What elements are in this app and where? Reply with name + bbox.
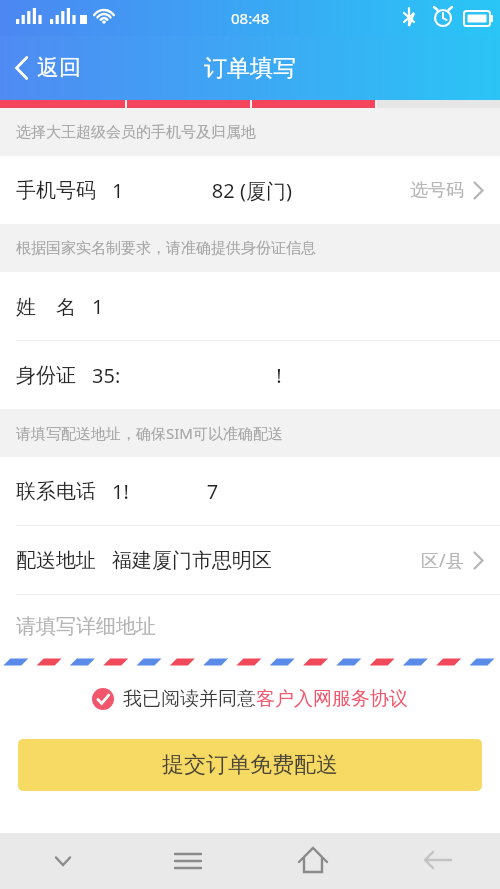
staticText: 提交订单免费配送 <box>162 751 338 779</box>
staticText: 福建厦门市思明区 <box>112 548 421 573</box>
button[interactable]: 返回 <box>0 36 95 100</box>
staticText: 身份证 <box>16 363 76 388</box>
staticText: 返回 <box>37 54 81 82</box>
button[interactable]: 提交订单免费配送 <box>18 739 482 791</box>
button[interactable]: 请填写详细地址 <box>0 595 500 657</box>
staticText: 选号码 <box>410 179 464 202</box>
staticText: 联系电话 <box>16 479 96 504</box>
staticText: 区/县 <box>421 548 464 573</box>
button[interactable]: Menu <box>125 833 250 889</box>
button[interactable]: 联系电话 <box>0 457 500 525</box>
staticText: 08:48 <box>231 8 270 28</box>
staticText: 姓 名 <box>16 293 76 320</box>
staticText: 1 82 (厦门) <box>112 177 410 204</box>
staticText: 请填写详细地址 <box>16 614 156 639</box>
staticText: 手机号码 <box>16 178 96 203</box>
staticText: 订单填写 <box>204 54 296 83</box>
button[interactable]: Back <box>375 833 500 889</box>
staticText: 35: ! <box>92 362 484 389</box>
staticText: 我已阅读并同意客户入网服务协议 <box>123 687 408 711</box>
button[interactable]: 姓 名 <box>0 272 500 340</box>
button[interactable]: Home <box>250 833 375 889</box>
button[interactable]: Agree <box>86 681 414 717</box>
button[interactable]: 配送地址 <box>0 526 500 594</box>
staticText: 选择大王超级会员的手机号及归属地 <box>16 123 256 142</box>
staticText: 根据国家实名制要求，请准确提供身份证信息 <box>16 239 316 258</box>
staticText: 1 <box>92 293 484 320</box>
staticText: 1! 7 <box>112 478 484 505</box>
staticText: 配送地址 <box>16 548 96 573</box>
button[interactable]: Collapse <box>0 833 125 889</box>
button[interactable]: 手机号码 <box>0 156 500 224</box>
button[interactable]: 身份证 <box>0 341 500 409</box>
staticText: 请填写配送地址，确保SIM可以准确配送 <box>16 423 283 443</box>
other: Agree <box>92 688 114 710</box>
